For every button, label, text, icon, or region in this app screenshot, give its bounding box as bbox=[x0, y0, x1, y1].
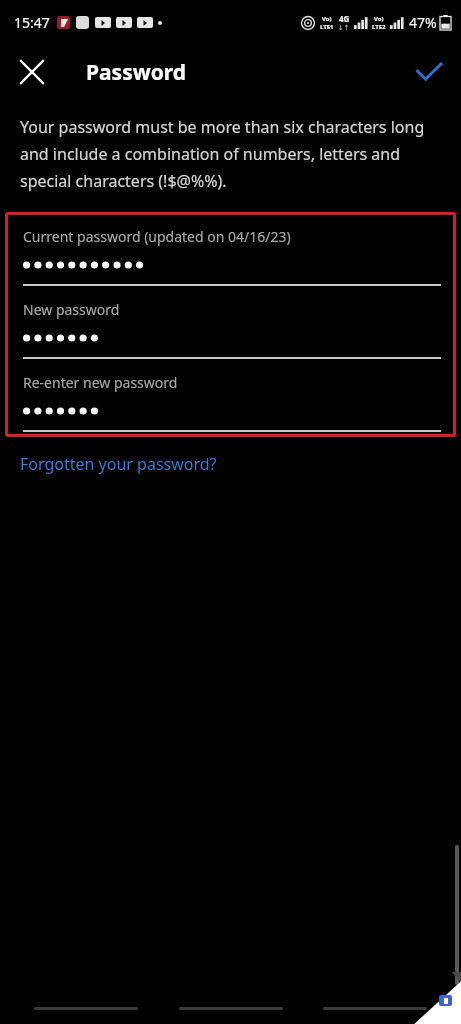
staticText: ↓↑ bbox=[338, 24, 350, 32]
staticText: 15:47 bbox=[14, 13, 50, 32]
staticText: New password bbox=[23, 300, 120, 319]
button[interactable]: Forgotten your password? bbox=[0, 447, 237, 481]
button[interactable]: New password bbox=[8, 288, 453, 361]
button[interactable]: Navigation button bbox=[179, 995, 283, 1021]
staticText: Current password (updated on 04/16/23) bbox=[23, 227, 291, 246]
button[interactable]: Current password (updated on 04/16/23) bbox=[8, 215, 453, 288]
staticText: Forgotten your password? bbox=[20, 453, 217, 475]
staticText: Vo) bbox=[322, 15, 332, 23]
button[interactable]: Navigation button bbox=[34, 995, 138, 1021]
staticText: 47% bbox=[409, 13, 437, 32]
button[interactable]: Navigation button bbox=[323, 995, 427, 1021]
staticText: Vo) bbox=[374, 15, 384, 23]
button[interactable]: Close bbox=[8, 48, 56, 96]
staticText: LTE2 bbox=[372, 23, 386, 31]
staticText: 4G bbox=[339, 13, 350, 24]
staticText: Re-enter new password bbox=[23, 373, 178, 392]
staticText: Password bbox=[86, 58, 187, 87]
staticText: LTE1 bbox=[320, 23, 334, 31]
staticText: Your password must be more than six char… bbox=[20, 116, 441, 192]
button[interactable]: Confirm bbox=[405, 48, 453, 96]
button[interactable]: Re-enter new password bbox=[8, 361, 453, 434]
